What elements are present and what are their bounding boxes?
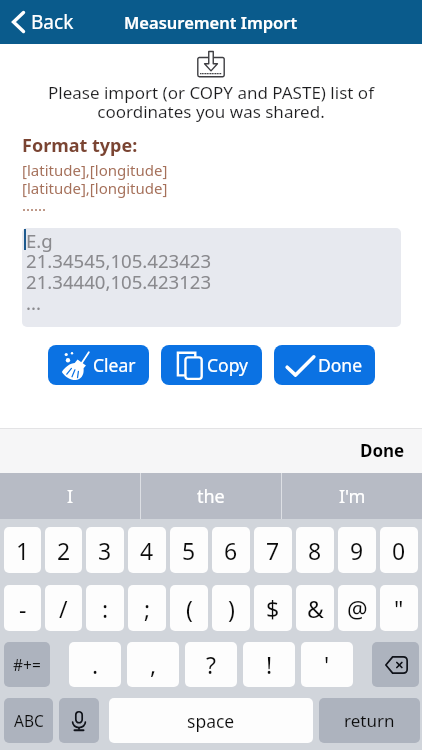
staticText: 7 <box>266 535 280 566</box>
staticText: / <box>59 593 68 624</box>
staticText: 4 <box>140 535 154 566</box>
button[interactable]: . <box>69 642 121 687</box>
button[interactable]: ( <box>170 585 208 631</box>
button[interactable]: 6 <box>212 527 250 573</box>
staticText: Format type: <box>22 133 138 158</box>
button[interactable]: Copy <box>161 345 262 385</box>
button[interactable]: Backspace <box>372 642 419 687</box>
button[interactable]: ; <box>128 585 166 631</box>
button[interactable]: Clear <box>48 345 149 385</box>
staticText: " <box>394 593 404 624</box>
button[interactable]: Done <box>274 345 375 385</box>
button[interactable]: & <box>296 585 334 631</box>
button[interactable]: @ <box>338 585 376 631</box>
staticText: space <box>187 709 235 733</box>
button[interactable]: return <box>319 698 420 743</box>
staticText: ' <box>324 649 330 680</box>
button[interactable]: 1 <box>4 527 41 573</box>
staticText: . <box>92 649 99 680</box>
button[interactable]: : <box>86 585 124 631</box>
staticText: & <box>307 593 324 624</box>
staticText: ; <box>144 593 151 624</box>
staticText: 3 <box>98 535 112 566</box>
staticText: I'm <box>339 484 366 509</box>
staticText: ) <box>228 593 235 624</box>
staticText: , <box>150 649 157 680</box>
button[interactable]: Done <box>343 429 422 472</box>
button[interactable]: the <box>141 473 281 519</box>
staticText: 8 <box>308 535 322 566</box>
staticText: - <box>19 593 27 624</box>
staticText: #+= <box>13 654 41 675</box>
staticText: : <box>102 593 109 624</box>
button[interactable]: 2 <box>45 527 82 573</box>
staticText: Copy <box>207 353 248 377</box>
button[interactable]: 4 <box>128 527 166 573</box>
button[interactable]: , <box>127 642 179 687</box>
staticText: ( <box>186 593 193 624</box>
staticText: Please import (or COPY and PASTE) list o… <box>16 81 406 123</box>
button[interactable]: " <box>380 585 418 631</box>
button[interactable]: Microphone <box>59 698 99 743</box>
button[interactable]: 3 <box>86 527 124 573</box>
button[interactable]: ABC <box>4 698 53 743</box>
button[interactable]: I'm <box>282 473 422 519</box>
staticText: 6 <box>224 535 238 566</box>
button[interactable]: 8 <box>296 527 334 573</box>
button[interactable]: ' <box>301 642 353 687</box>
staticText: Measurement Import <box>124 11 298 33</box>
button[interactable]: I <box>0 473 140 519</box>
button[interactable]: #+= <box>4 642 50 687</box>
button[interactable]: ! <box>243 642 295 687</box>
staticText: 5 <box>182 535 196 566</box>
button[interactable]: - <box>4 585 41 631</box>
staticText: Back <box>31 9 74 35</box>
staticText: [latitude],[longitude] [latitude],[longi… <box>22 160 168 198</box>
staticText: I <box>67 484 74 509</box>
staticText: ...... <box>22 195 47 215</box>
button[interactable]: 0 <box>380 527 418 573</box>
staticText: @ <box>347 593 368 624</box>
button[interactable]: ) <box>212 585 250 631</box>
staticText: return <box>344 709 395 732</box>
staticText: 1 <box>16 535 30 566</box>
staticText: ? <box>206 649 216 680</box>
button[interactable]: / <box>45 585 82 631</box>
button[interactable]: Back <box>0 0 84 44</box>
staticText: 2 <box>57 535 71 566</box>
staticText: 9 <box>350 535 364 566</box>
button[interactable]: 7 <box>254 527 292 573</box>
staticText: E.g 21.34545,105.423423 21.34440,105.423… <box>26 228 212 316</box>
button[interactable]: ? <box>185 642 237 687</box>
staticText: ! <box>266 649 273 680</box>
staticText: 0 <box>392 535 406 566</box>
staticText: ABC <box>14 710 44 731</box>
button[interactable]: 9 <box>338 527 376 573</box>
button[interactable]: $ <box>254 585 292 631</box>
button[interactable]: 5 <box>170 527 208 573</box>
staticText: Clear <box>93 353 136 377</box>
staticText: $ <box>266 593 280 624</box>
staticText: the <box>197 484 225 509</box>
staticText: Done <box>318 353 363 377</box>
button[interactable]: space <box>109 698 313 743</box>
